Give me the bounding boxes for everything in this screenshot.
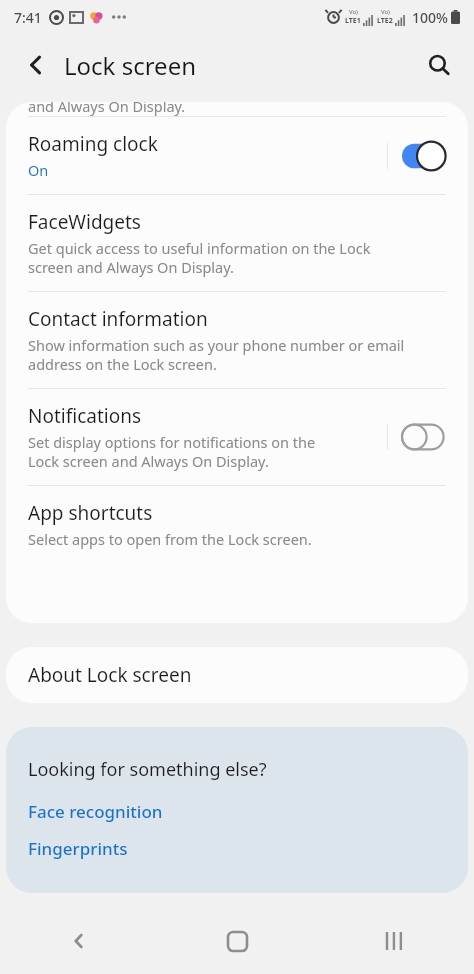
button[interactable]: Contact information	[6, 292, 468, 388]
staticText: 7:41	[14, 8, 42, 27]
staticText: Roaming clock	[28, 131, 158, 157]
staticText: Set display options for notifications on…	[28, 432, 316, 471]
staticText: Face recognition	[28, 800, 163, 823]
button[interactable]: Face recognition	[28, 800, 163, 823]
button[interactable]: Back	[16, 45, 56, 85]
staticText: Lock screen	[64, 49, 197, 82]
button[interactable]: FaceWidgets	[6, 195, 468, 291]
button[interactable]: App shortcuts	[6, 486, 468, 563]
button[interactable]: Notifications	[6, 389, 468, 485]
staticText: Contact information	[28, 306, 208, 332]
button[interactable]: Recents	[316, 908, 474, 974]
button[interactable]: Fingerprints	[28, 837, 128, 860]
staticText: Vo)	[349, 8, 358, 16]
staticText: Select apps to open from the Lock screen…	[28, 529, 312, 549]
staticText: Looking for something else?	[28, 757, 267, 782]
staticText: Fingerprints	[28, 837, 128, 860]
staticText: On	[28, 160, 49, 180]
staticText: Show information such as your phone numb…	[28, 335, 405, 374]
staticText: LTE2	[377, 16, 393, 26]
button[interactable]: Toggle on	[402, 141, 454, 171]
staticText: LTE1	[345, 16, 361, 26]
button[interactable]: Search	[418, 44, 460, 86]
button[interactable]: About Lock screen	[6, 647, 468, 703]
staticText: and Always On Display.	[28, 102, 186, 116]
staticText: FaceWidgets	[28, 209, 141, 235]
staticText: Notifications	[28, 403, 142, 429]
staticText: About Lock screen	[28, 662, 192, 688]
staticText: Get quick access to useful information o…	[28, 238, 371, 277]
button[interactable]: Back	[0, 908, 158, 974]
staticText: 100%	[412, 8, 448, 27]
button[interactable]: Roaming clock	[6, 117, 468, 194]
button[interactable]: Toggle off	[402, 422, 454, 452]
staticText: App shortcuts	[28, 500, 153, 526]
staticText: Vo)	[381, 8, 390, 16]
button[interactable]: Home	[158, 908, 316, 974]
